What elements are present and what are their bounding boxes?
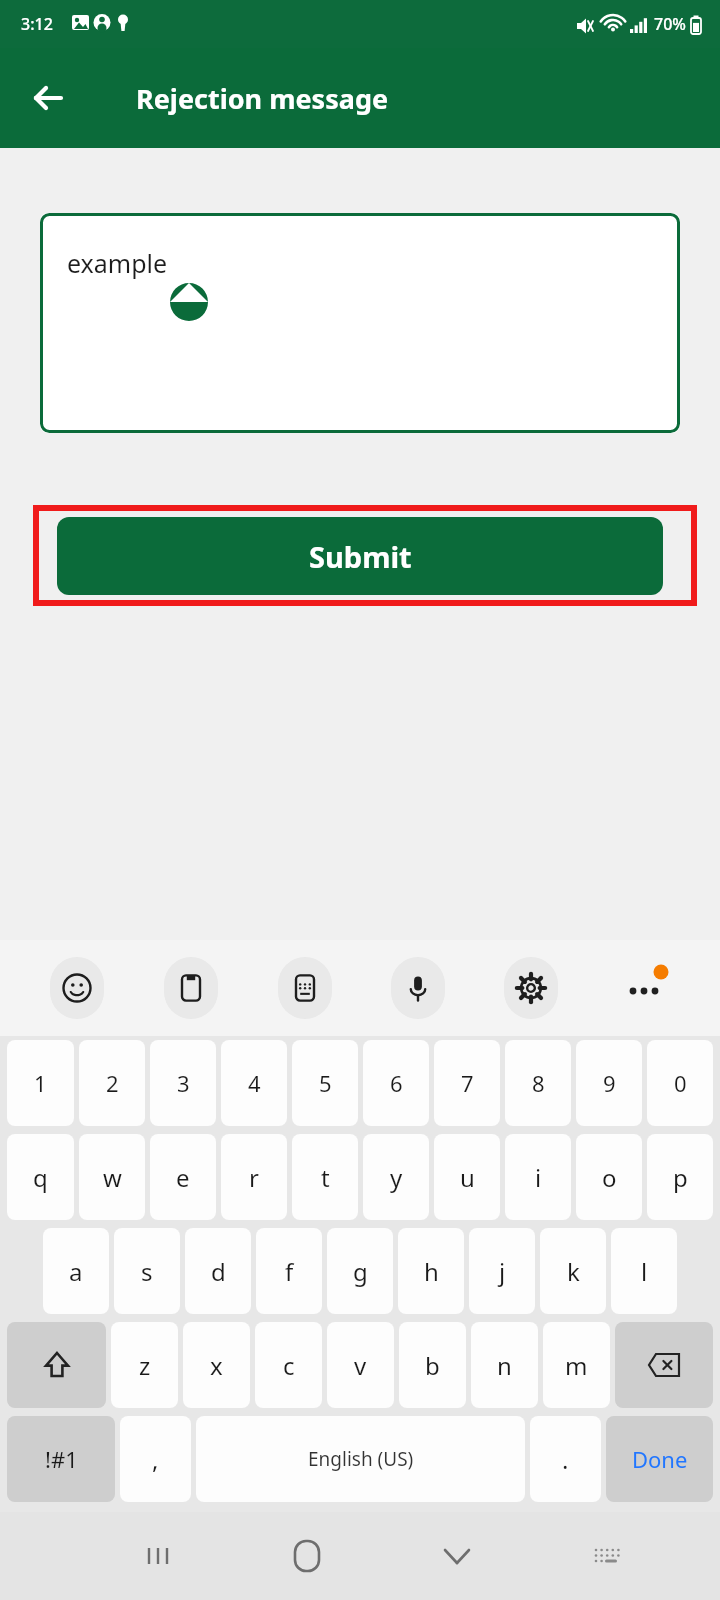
staticText: i: [535, 1161, 542, 1194]
staticText: p: [673, 1161, 688, 1194]
button[interactable]: 7: [434, 1040, 500, 1126]
button[interactable]: 8: [505, 1040, 571, 1126]
button[interactable]: 5: [292, 1040, 358, 1126]
staticText: o: [602, 1161, 617, 1194]
button[interactable]: 0: [647, 1040, 713, 1126]
button[interactable]: 1: [7, 1040, 74, 1126]
button[interactable]: v: [327, 1322, 394, 1408]
staticText: j: [499, 1255, 506, 1288]
staticText: g: [353, 1255, 368, 1288]
button[interactable]: q: [7, 1134, 74, 1220]
staticText: x: [210, 1349, 223, 1382]
staticText: r: [249, 1161, 259, 1194]
button[interactable]: English (US): [196, 1416, 525, 1502]
staticText: h: [424, 1255, 439, 1288]
button[interactable]: i: [505, 1134, 571, 1220]
staticText: 2: [106, 1068, 119, 1098]
button[interactable]: Back: [20, 70, 76, 126]
button[interactable]: More options: [587, 940, 700, 1036]
button[interactable]: 4: [221, 1040, 287, 1126]
staticText: e: [176, 1161, 190, 1194]
staticText: Submit: [309, 537, 412, 576]
button[interactable]: n: [471, 1322, 538, 1408]
staticText: d: [211, 1255, 226, 1288]
button[interactable]: Clipboard: [134, 940, 248, 1036]
staticText: 8: [532, 1068, 545, 1098]
button[interactable]: Hide keyboard: [382, 1512, 532, 1600]
button[interactable]: r: [221, 1134, 287, 1220]
staticText: 70%: [654, 13, 686, 35]
button[interactable]: g: [327, 1228, 393, 1314]
staticText: f: [285, 1255, 294, 1288]
button[interactable]: c: [255, 1322, 322, 1408]
button[interactable]: Backspace: [615, 1322, 713, 1408]
button[interactable]: Voice input: [361, 940, 474, 1036]
button[interactable]: a: [43, 1228, 109, 1314]
staticText: q: [33, 1161, 48, 1194]
button[interactable]: u: [434, 1134, 500, 1220]
button[interactable]: t: [292, 1134, 358, 1220]
button[interactable]: 6: [363, 1040, 429, 1126]
staticText: u: [460, 1161, 475, 1194]
button[interactable]: b: [399, 1322, 466, 1408]
button[interactable]: Done: [606, 1416, 713, 1502]
button[interactable]: e: [150, 1134, 216, 1220]
button[interactable]: l: [611, 1228, 677, 1314]
button[interactable]: y: [363, 1134, 429, 1220]
button[interactable]: Change keyboard: [532, 1512, 682, 1600]
staticText: n: [497, 1349, 512, 1382]
staticText: 3:12: [21, 13, 53, 35]
button[interactable]: ,: [120, 1416, 191, 1502]
staticText: Rejection message: [136, 80, 389, 117]
staticText: 1: [34, 1068, 47, 1098]
button[interactable]: Stickers: [248, 940, 361, 1036]
button[interactable]: .: [530, 1416, 601, 1502]
button[interactable]: d: [185, 1228, 251, 1314]
staticText: English (US): [308, 1446, 414, 1472]
button[interactable]: 2: [79, 1040, 145, 1126]
button[interactable]: h: [398, 1228, 464, 1314]
staticText: 5: [319, 1068, 332, 1098]
staticText: c: [283, 1349, 295, 1382]
staticText: ,: [152, 1443, 159, 1476]
button[interactable]: p: [647, 1134, 713, 1220]
staticText: k: [567, 1255, 580, 1288]
button[interactable]: Shift: [7, 1322, 106, 1408]
staticText: .: [562, 1443, 569, 1476]
button[interactable]: w: [79, 1134, 145, 1220]
staticText: 9: [603, 1068, 616, 1098]
staticText: t: [321, 1161, 330, 1194]
staticText: 6: [390, 1068, 403, 1098]
button[interactable]: 9: [576, 1040, 642, 1126]
button[interactable]: x: [183, 1322, 250, 1408]
button[interactable]: o: [576, 1134, 642, 1220]
button[interactable]: k: [540, 1228, 606, 1314]
staticText: z: [139, 1349, 151, 1382]
staticText: b: [425, 1349, 440, 1382]
button[interactable]: m: [543, 1322, 610, 1408]
staticText: v: [354, 1349, 367, 1382]
button[interactable]: Emoji: [20, 940, 134, 1036]
button[interactable]: s: [114, 1228, 180, 1314]
staticText: a: [69, 1255, 83, 1288]
staticText: 3: [177, 1068, 190, 1098]
button[interactable]: !#1: [7, 1416, 115, 1502]
button[interactable]: Keyboard settings: [474, 940, 587, 1036]
button[interactable]: j: [469, 1228, 535, 1314]
button[interactable]: Recent apps: [82, 1512, 232, 1600]
staticText: Done: [632, 1444, 688, 1474]
staticText: l: [641, 1255, 648, 1288]
staticText: y: [390, 1161, 403, 1194]
staticText: w: [103, 1161, 122, 1194]
button[interactable]: Submit: [57, 517, 663, 595]
staticText: m: [565, 1349, 588, 1382]
staticText: example: [67, 246, 168, 280]
staticText: 0: [674, 1068, 687, 1098]
button[interactable]: example: [40, 213, 680, 433]
button[interactable]: z: [111, 1322, 178, 1408]
staticText: 4: [248, 1068, 261, 1098]
button[interactable]: f: [256, 1228, 322, 1314]
button[interactable]: 3: [150, 1040, 216, 1126]
button[interactable]: Home: [232, 1512, 382, 1600]
staticText: s: [141, 1255, 153, 1288]
